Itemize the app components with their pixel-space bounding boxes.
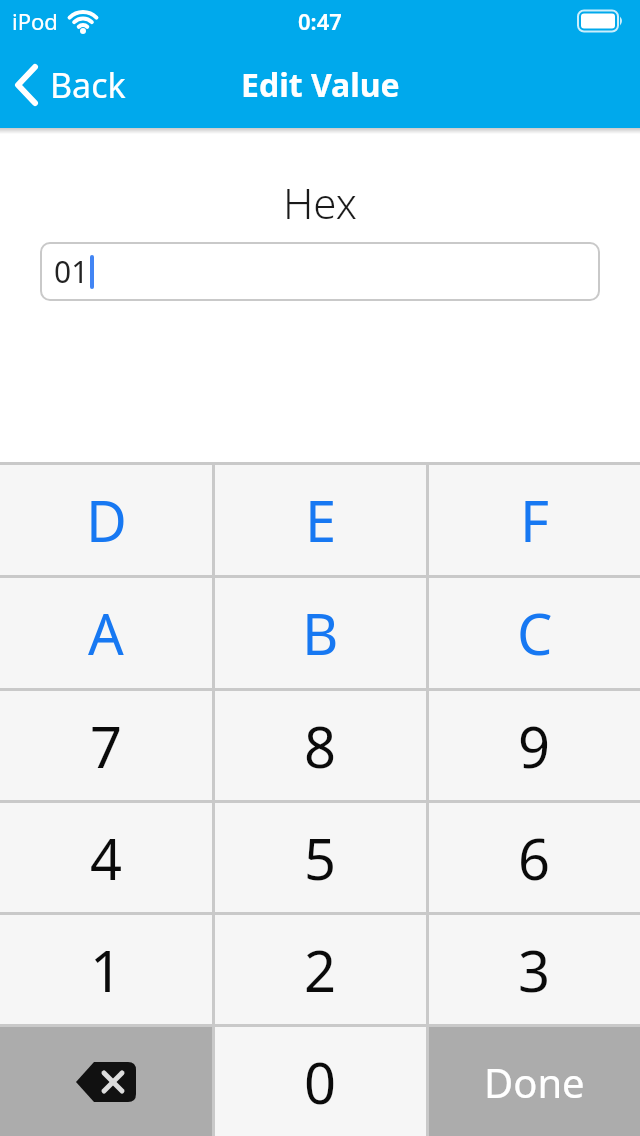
- staticText: D: [86, 482, 127, 558]
- button[interactable]: 8: [215, 691, 426, 800]
- staticText: 1: [90, 932, 123, 1008]
- staticText: 01: [54, 251, 89, 292]
- button[interactable]: D: [0, 465, 212, 575]
- button[interactable]: B: [215, 578, 426, 688]
- button[interactable]: C: [429, 578, 640, 688]
- staticText: E: [305, 482, 337, 558]
- button[interactable]: 7: [0, 691, 212, 800]
- button[interactable]: 01: [40, 242, 600, 301]
- staticText: A: [88, 595, 124, 671]
- button[interactable]: 1: [0, 915, 212, 1024]
- staticText: Done: [484, 1055, 585, 1109]
- staticText: C: [517, 595, 553, 671]
- button[interactable]: 5: [215, 803, 426, 912]
- button[interactable]: [0, 1027, 212, 1136]
- staticText: 6: [518, 820, 551, 896]
- staticText: 4: [90, 820, 123, 896]
- staticText: 9: [518, 708, 551, 784]
- staticText: B: [302, 595, 339, 671]
- button[interactable]: Done: [429, 1027, 640, 1136]
- staticText: 8: [304, 708, 337, 784]
- button[interactable]: 0: [215, 1027, 426, 1136]
- staticText: Back: [50, 62, 126, 108]
- staticText: F: [520, 482, 550, 558]
- button[interactable]: 9: [429, 691, 640, 800]
- staticText: Edit Value: [241, 63, 400, 107]
- button[interactable]: Back: [0, 62, 126, 108]
- staticText: 0:47: [298, 6, 342, 36]
- button[interactable]: 2: [215, 915, 426, 1024]
- button[interactable]: 6: [429, 803, 640, 912]
- staticText: 0: [304, 1044, 337, 1120]
- button[interactable]: 4: [0, 803, 212, 912]
- button[interactable]: A: [0, 578, 212, 688]
- staticText: Hex: [283, 174, 357, 231]
- staticText: 5: [304, 820, 337, 896]
- staticText: 2: [304, 932, 337, 1008]
- button[interactable]: E: [215, 465, 426, 575]
- button[interactable]: F: [429, 465, 640, 575]
- staticText: 7: [90, 708, 123, 784]
- staticText: 3: [518, 932, 551, 1008]
- staticText: iPod: [12, 6, 58, 36]
- button[interactable]: 3: [429, 915, 640, 1024]
